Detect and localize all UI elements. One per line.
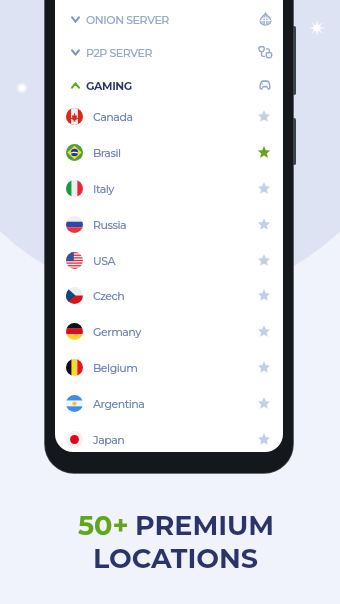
staticText: Italy: [93, 182, 115, 195]
button[interactable]: Favorite Germany: [254, 321, 274, 341]
button[interactable]: Favorite Brasil: [254, 142, 274, 162]
staticText: Germany: [93, 325, 141, 338]
button[interactable]: Favorite Belgium: [254, 357, 274, 377]
staticText: Japan: [93, 433, 125, 446]
button[interactable]: ONION SERVER: [55, 2, 283, 36]
button[interactable]: Favorite USA: [254, 250, 274, 270]
staticText: Belgium: [93, 361, 138, 374]
button[interactable]: Brasil: [55, 134, 283, 170]
button[interactable]: Germany: [55, 313, 283, 349]
button[interactable]: Argentina: [55, 385, 283, 421]
button[interactable]: P2P SERVER: [55, 35, 283, 69]
staticText: Brasil: [93, 146, 121, 159]
staticText: P2P SERVER: [86, 46, 153, 59]
button[interactable]: Favorite Japan: [254, 429, 274, 449]
staticText: USA: [93, 254, 116, 267]
button[interactable]: Belgium: [55, 349, 283, 385]
button[interactable]: Favorite Canada: [254, 106, 274, 126]
button[interactable]: Favorite Italy: [254, 178, 274, 198]
button[interactable]: Canada: [55, 98, 283, 134]
button[interactable]: GAMING: [55, 68, 283, 102]
button[interactable]: Favorite Russia: [254, 214, 274, 234]
button[interactable]: Italy: [55, 170, 283, 206]
staticText: PREMIUM: [135, 509, 275, 542]
button[interactable]: Russia: [55, 206, 283, 242]
staticText: 50+: [78, 509, 129, 542]
button[interactable]: Japan: [55, 421, 283, 452]
staticText: GAMING: [86, 79, 132, 92]
staticText: Canada: [93, 110, 133, 123]
staticText: Czech: [93, 289, 125, 302]
button[interactable]: Favorite Argentina: [254, 393, 274, 413]
button[interactable]: Favorite Czech: [254, 285, 274, 305]
staticText: LOCATIONS: [93, 542, 259, 575]
button[interactable]: USA: [55, 242, 283, 278]
staticText: Argentina: [93, 397, 145, 410]
staticText: ONION SERVER: [86, 13, 169, 26]
button[interactable]: Czech: [55, 277, 283, 313]
staticText: Russia: [93, 218, 127, 231]
